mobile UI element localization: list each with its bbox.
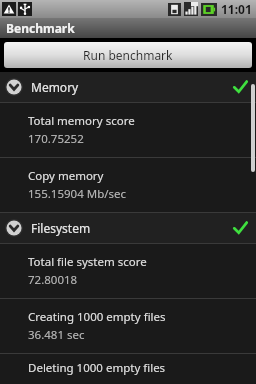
button[interactable]: Copy memory: [0, 158, 256, 212]
staticText: Run benchmark: [83, 47, 173, 63]
staticText: Copy memory: [28, 168, 104, 184]
button[interactable]: Total file system score: [0, 244, 256, 298]
other: Battery: [201, 3, 217, 16]
button[interactable]: Creating 1000 empty files: [0, 299, 256, 353]
other: Signal strength 3G: [184, 2, 198, 16]
button[interactable]: Run benchmark: [4, 42, 252, 68]
staticText: 36.481 sec: [28, 327, 85, 343]
staticText: Total memory score: [28, 113, 135, 129]
other: Warning: [2, 2, 16, 16]
staticText: Total file system score: [28, 254, 147, 270]
staticText: 72.80018: [28, 272, 78, 288]
staticText: Deleting 1000 empty files: [28, 360, 166, 376]
button[interactable]: Deleting 1000 empty files: [0, 354, 256, 384]
staticText: Filesystem: [31, 220, 91, 236]
staticText: 11:01: [221, 1, 252, 17]
staticText: Memory: [31, 79, 79, 95]
other: SD card: [168, 3, 181, 16]
button[interactable]: Total memory score: [0, 103, 256, 157]
staticText: Creating 1000 empty files: [28, 309, 166, 325]
other: USB connected: [18, 2, 32, 16]
staticText: 155.15904 Mb/sec: [28, 186, 126, 202]
staticText: Benchmark: [6, 20, 75, 36]
button[interactable]: Memory: [0, 72, 256, 102]
button[interactable]: Filesystem: [0, 213, 256, 243]
staticText: 170.75252: [28, 131, 84, 147]
